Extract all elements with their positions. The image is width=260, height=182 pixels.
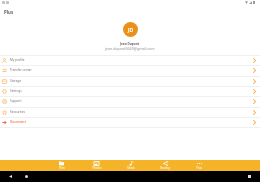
button[interactable]: Back bbox=[6, 172, 14, 180]
staticText: Plus bbox=[196, 166, 202, 170]
staticText: Music bbox=[127, 166, 135, 170]
staticText: Transfer center bbox=[10, 68, 32, 72]
staticText: Files bbox=[59, 166, 65, 170]
staticText: JD bbox=[128, 26, 134, 33]
staticText: Support bbox=[10, 99, 22, 103]
button[interactable]: Favourites bbox=[0, 107, 260, 117]
button[interactable]: Photos bbox=[79, 160, 114, 171]
button[interactable]: Transfer center bbox=[0, 65, 260, 75]
staticText: Jean Dupont bbox=[120, 42, 140, 46]
staticText: Sharing bbox=[160, 166, 170, 170]
button[interactable]: Disconnect bbox=[0, 117, 260, 127]
button[interactable]: Sharing bbox=[148, 160, 182, 171]
button[interactable]: Support bbox=[0, 96, 260, 106]
button[interactable]: Recents bbox=[245, 172, 253, 180]
button[interactable]: Home bbox=[22, 172, 30, 180]
button[interactable]: Settings bbox=[0, 86, 260, 96]
staticText: Storage bbox=[10, 79, 22, 83]
staticText: Disconnect bbox=[10, 120, 26, 124]
button[interactable]: My profile bbox=[0, 55, 260, 65]
button[interactable]: Storage bbox=[0, 76, 260, 86]
staticText: jean.dupont5649@gmail.com bbox=[105, 46, 155, 51]
staticText: Favourites bbox=[10, 110, 25, 114]
staticText: Photos bbox=[92, 166, 102, 170]
button[interactable]: Plus bbox=[182, 160, 216, 171]
staticText: My profile bbox=[10, 58, 25, 62]
staticText: Settings bbox=[10, 89, 22, 93]
button[interactable]: Files bbox=[44, 160, 79, 171]
staticText: Plus bbox=[4, 9, 14, 15]
button[interactable]: Music bbox=[114, 160, 148, 171]
